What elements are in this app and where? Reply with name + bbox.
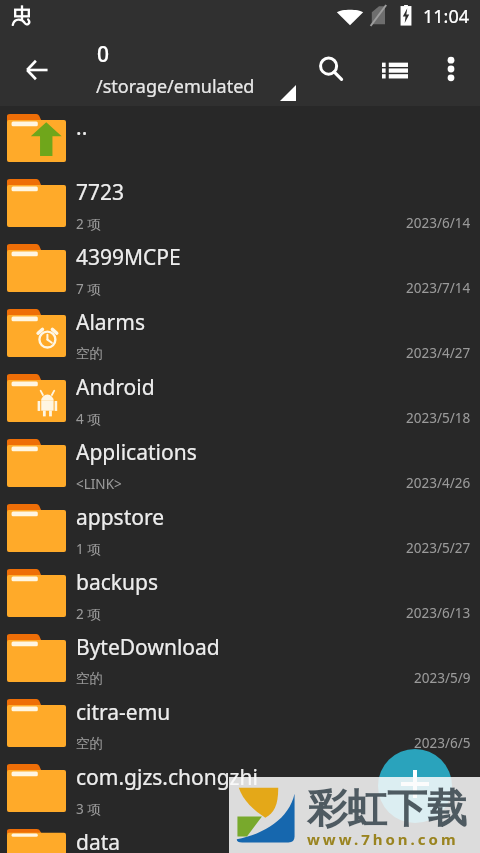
staticText: 4399MCPE xyxy=(76,243,181,272)
button[interactable]: 7723 xyxy=(0,171,480,236)
staticText: 2023/6/13 xyxy=(406,604,471,622)
staticText: ByteDownload xyxy=(76,633,220,662)
staticText: www.7hon.com xyxy=(307,829,459,849)
button[interactable]: Add xyxy=(378,749,452,823)
staticText: 2023/6/14 xyxy=(406,214,471,232)
staticText: Applications xyxy=(76,438,197,467)
staticText: 2023/7/14 xyxy=(406,279,471,297)
staticText: 2023/5/9 xyxy=(414,669,471,687)
button[interactable]: 4399MCPE xyxy=(0,236,480,301)
staticText: <LINK> xyxy=(76,475,122,493)
button[interactable]: View mode xyxy=(371,46,419,94)
staticText: data xyxy=(76,828,121,853)
staticText: citra-emu xyxy=(76,698,171,727)
staticText: 2023/6/5 xyxy=(414,734,471,752)
button[interactable]: ByteDownload xyxy=(0,626,480,691)
button[interactable]: More options xyxy=(427,45,475,93)
button[interactable]: com.gjzs.chongzhi xyxy=(0,756,480,821)
staticText: 7 项 xyxy=(76,280,101,298)
staticText: 1 项 xyxy=(76,540,101,558)
staticText: 空的 xyxy=(76,670,103,687)
button[interactable]: backups xyxy=(0,561,480,626)
staticText: 空的 xyxy=(76,735,103,752)
staticText: Alarms xyxy=(76,308,145,337)
staticText: 4 项 xyxy=(76,410,101,428)
staticText: 空的 xyxy=(76,345,103,362)
staticText: .. xyxy=(76,113,88,142)
staticText: 7723 xyxy=(76,178,125,207)
button[interactable]: Back xyxy=(13,46,61,94)
button[interactable]: appstore xyxy=(0,496,480,561)
staticText: 2023/4/27 xyxy=(406,344,471,362)
button[interactable]: Search xyxy=(304,45,352,93)
button[interactable]: Android xyxy=(0,366,480,431)
button[interactable]: Alarms xyxy=(0,301,480,366)
staticText: 11:04 xyxy=(423,4,470,29)
staticText: com.gjzs.chongzhi xyxy=(76,763,258,792)
button[interactable]: data xyxy=(0,821,480,853)
staticText: appstore xyxy=(76,503,165,532)
staticText: 2 项 xyxy=(76,215,101,233)
staticText: 2023/5/27 xyxy=(406,539,471,557)
button[interactable]: citra-emu xyxy=(0,691,480,756)
staticText: 2023/4/26 xyxy=(406,474,471,492)
staticText: backups xyxy=(76,568,158,597)
staticText: Android xyxy=(76,373,155,402)
staticText: 彩虹下载 xyxy=(307,783,467,833)
staticText: 2023/5/18 xyxy=(406,409,471,427)
staticText: /storage/emulated xyxy=(96,74,255,99)
staticText: 2 项 xyxy=(76,605,101,623)
button[interactable]: .. xyxy=(0,106,480,171)
staticText: 3 项 xyxy=(76,800,101,818)
staticText: 0 xyxy=(97,40,110,69)
button[interactable]: Applications xyxy=(0,431,480,496)
